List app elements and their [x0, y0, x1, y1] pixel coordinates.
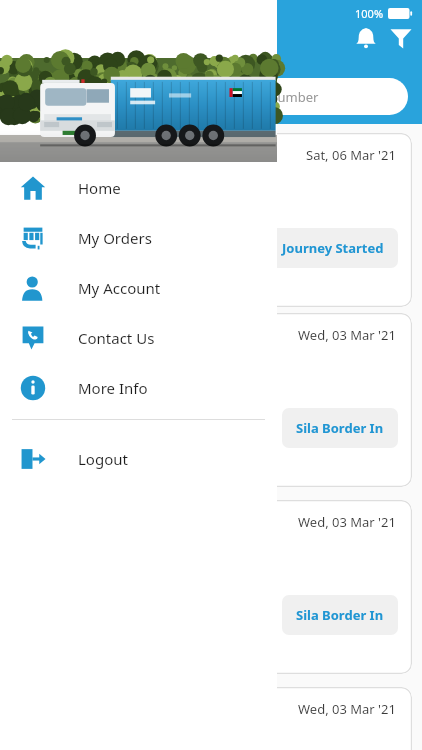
staticText: Journey Started [282, 239, 384, 257]
button[interactable]: Home [0, 163, 277, 213]
button[interactable]: Sat, 06 Mar '21 [10, 133, 412, 307]
staticText: My Account [78, 278, 161, 298]
button[interactable]: Search by Order Number [150, 78, 408, 115]
button[interactable]: More Info [0, 363, 277, 413]
staticText: Search by Order Number [166, 88, 319, 106]
button[interactable]: Notifications [350, 22, 382, 54]
button[interactable]: Sila Border In [282, 408, 398, 448]
staticText: Sila Border In [296, 606, 384, 624]
button[interactable]: Contact Us [0, 313, 277, 363]
staticText: Home [78, 178, 121, 198]
button[interactable]: Journey Started [268, 228, 398, 268]
button[interactable]: Filter [385, 22, 417, 54]
staticText: Contact Us [78, 328, 155, 348]
button[interactable]: My Account [0, 263, 277, 313]
staticText: Wed, 03 Mar '21 [298, 326, 396, 344]
staticText: Sila Border In [296, 419, 384, 437]
staticText: More Info [78, 378, 148, 398]
button[interactable]: Wed, 03 Mar '21 [10, 687, 412, 750]
staticText: Wed, 03 Mar '21 [298, 513, 396, 531]
staticText: 100% [355, 6, 384, 21]
staticText: My Orders [78, 228, 152, 248]
button[interactable]: Wed, 03 Mar '21 [10, 313, 412, 487]
staticText: Logout [78, 449, 128, 469]
button[interactable]: My Orders [0, 213, 277, 263]
staticText: Sat, 06 Mar '21 [306, 146, 396, 164]
staticText: Wed, 03 Mar '21 [298, 700, 396, 718]
button[interactable]: Sila Border In [282, 595, 398, 635]
button[interactable]: Logout [0, 434, 277, 484]
button[interactable]: Wed, 03 Mar '21 [10, 500, 412, 674]
